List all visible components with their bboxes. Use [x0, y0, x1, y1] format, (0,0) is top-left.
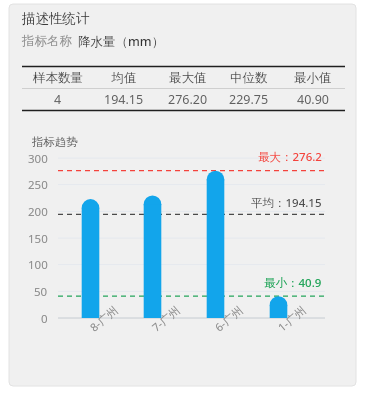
button[interactable]: 描述性统计卡片 — [0, 0, 368, 405]
